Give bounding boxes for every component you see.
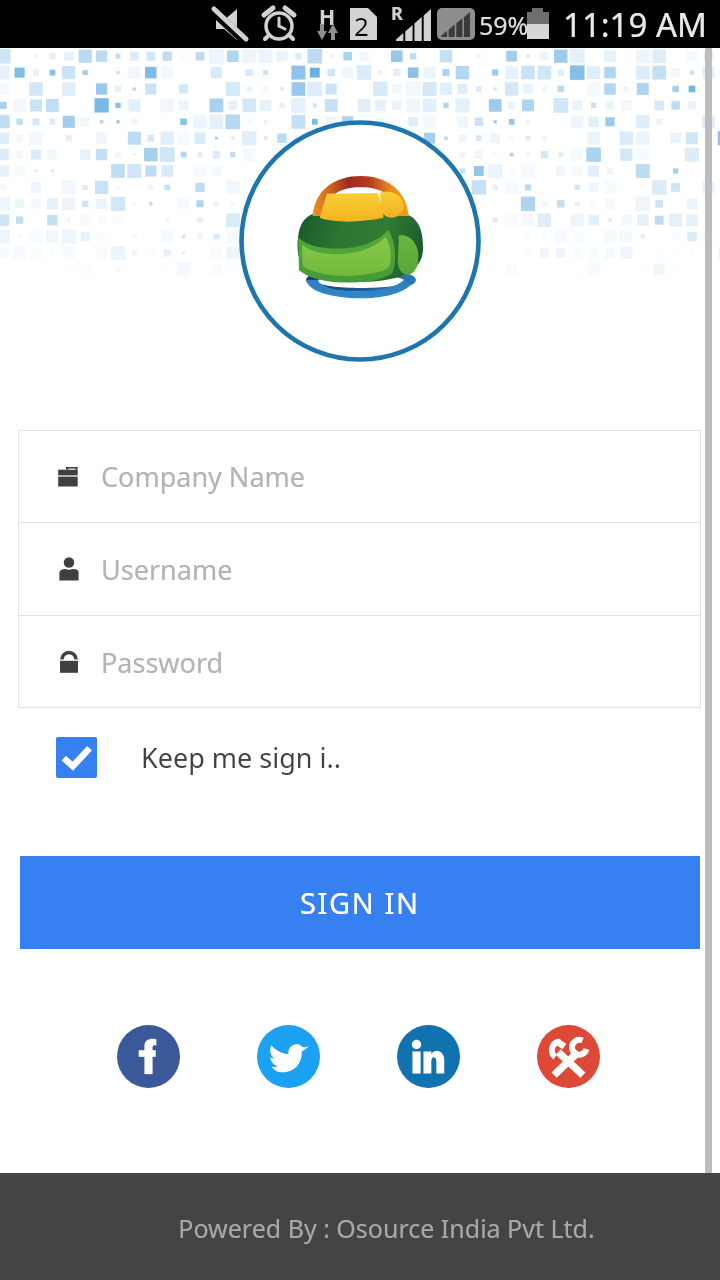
button[interactable]: Support: [537, 1025, 600, 1088]
staticText: R: [391, 1, 403, 26]
staticText: 2: [354, 8, 369, 43]
staticText: 11:19 AM: [563, 2, 707, 47]
button[interactable]: Username: [18, 523, 701, 615]
button[interactable]: LinkedIn: [397, 1025, 460, 1088]
staticText: Powered By : Osource India Pvt Ltd.: [178, 1211, 595, 1245]
staticText: Company Name: [101, 458, 306, 495]
staticText: SIGN IN: [300, 883, 420, 922]
staticText: Username: [101, 551, 233, 588]
staticText: 59%: [479, 8, 529, 42]
staticText: Password: [101, 644, 224, 681]
button[interactable]: Facebook: [117, 1025, 180, 1088]
button[interactable]: Twitter: [257, 1025, 320, 1088]
staticText: Keep me sign i..: [141, 739, 341, 776]
staticText: H: [319, 3, 336, 32]
button[interactable]: SIGN IN: [20, 856, 700, 949]
button[interactable]: Keep me sign i..: [56, 737, 341, 778]
button[interactable]: Company Name: [18, 430, 701, 522]
button[interactable]: Password: [18, 616, 701, 708]
